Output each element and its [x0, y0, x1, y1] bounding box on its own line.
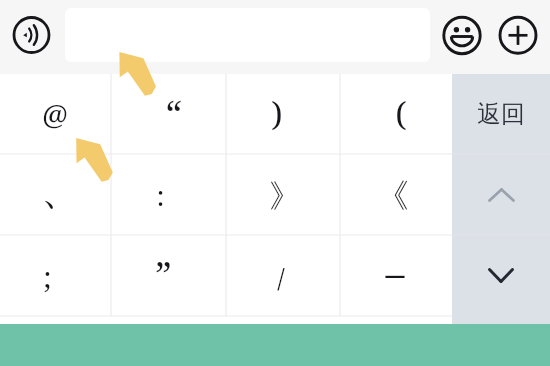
staticText: @	[42, 95, 68, 133]
staticText: :	[156, 176, 165, 214]
button[interactable]: 》	[226, 154, 340, 235]
button[interactable]: @	[0, 74, 111, 154]
staticText: –	[385, 246, 405, 298]
button[interactable]: Next page	[452, 235, 550, 316]
staticText: 》	[269, 176, 301, 216]
button[interactable]: Add	[496, 13, 540, 57]
button[interactable]	[65, 8, 430, 62]
button[interactable]: ”	[111, 235, 226, 316]
button[interactable]: )	[226, 74, 340, 154]
button[interactable]: :	[111, 154, 226, 235]
button[interactable]: 、	[0, 154, 111, 235]
staticText: “	[165, 89, 182, 138]
button[interactable]: Emoji	[440, 13, 484, 57]
staticText: (	[395, 91, 407, 136]
button[interactable]: ;	[0, 235, 111, 316]
staticText: 返回	[477, 99, 525, 129]
button[interactable]: Previous page	[452, 154, 550, 235]
staticText: 、	[41, 165, 81, 215]
staticText: ;	[43, 257, 52, 296]
button[interactable]: Voice input	[6, 10, 57, 61]
button[interactable]: “	[111, 74, 226, 154]
staticText: )	[271, 91, 283, 136]
button[interactable]: 返回	[452, 74, 550, 154]
button[interactable]: (	[340, 74, 452, 154]
staticText: /	[277, 259, 285, 294]
button[interactable]: –	[340, 235, 452, 316]
button[interactable]: 《	[340, 154, 452, 235]
button[interactable]: /	[226, 235, 340, 316]
staticText: ”	[155, 250, 172, 299]
staticText: 《	[376, 175, 409, 217]
